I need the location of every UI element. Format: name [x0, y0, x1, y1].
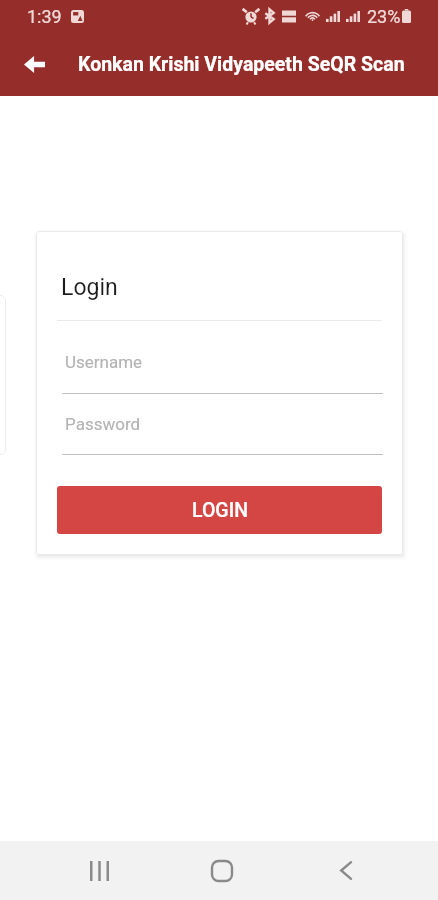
staticText: Login	[61, 274, 118, 301]
staticText: Konkan Krishi Vidyapeeth SeQR Scan	[78, 53, 405, 76]
button[interactable]: Home	[192, 841, 252, 900]
button[interactable]: Username	[62, 346, 383, 394]
staticText: 23%	[367, 6, 401, 27]
button[interactable]: Recent apps	[69, 841, 129, 900]
button[interactable]: Back	[316, 841, 376, 900]
staticText: Password	[65, 414, 141, 434]
button[interactable]: Navigate up	[13, 43, 55, 85]
staticText: 1:39	[27, 6, 62, 27]
staticText: Username	[65, 352, 143, 372]
button[interactable]: LOGIN	[57, 486, 382, 534]
staticText: LOGIN	[192, 499, 248, 522]
button[interactable]: Password	[62, 408, 383, 455]
